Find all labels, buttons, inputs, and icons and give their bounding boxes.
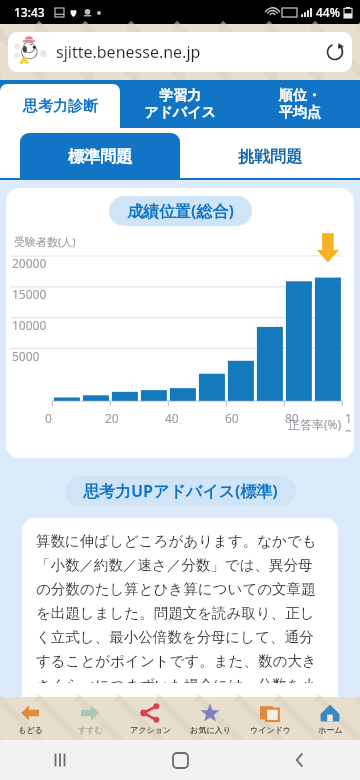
button[interactable]: 思考力診断 bbox=[0, 84, 120, 128]
staticText: sjitte.benesse.ne.jp bbox=[56, 41, 201, 63]
button[interactable]: アクション bbox=[120, 697, 180, 740]
button[interactable]: ウインドウ bbox=[240, 697, 300, 740]
staticText: 学習力 アドバイス bbox=[144, 87, 216, 121]
staticText: 5000 bbox=[12, 348, 40, 364]
staticText: 受験者数(人) bbox=[14, 234, 76, 249]
button[interactable]: お気に入り bbox=[180, 697, 240, 740]
button[interactable]: sjitte.benesse.ne.jp bbox=[8, 32, 352, 72]
staticText: 20000 bbox=[12, 255, 47, 271]
staticText: 思考力診断 bbox=[23, 97, 98, 116]
staticText: 13:43 bbox=[14, 4, 45, 20]
button[interactable]: Back bbox=[240, 740, 360, 780]
staticText: もどる bbox=[18, 725, 43, 735]
button[interactable]: ホーム bbox=[300, 697, 360, 740]
staticText: 0 bbox=[45, 410, 52, 426]
button[interactable]: 標準問題 bbox=[20, 133, 180, 180]
staticText: ホーム bbox=[318, 725, 343, 735]
staticText: 40 bbox=[165, 410, 179, 426]
staticText: 15000 bbox=[12, 286, 47, 302]
staticText: お気に入り bbox=[190, 725, 231, 735]
staticText: 順位・ 平均点 bbox=[279, 87, 321, 121]
button[interactable]: 学習力 アドバイス bbox=[120, 80, 240, 128]
button[interactable]: Reload bbox=[318, 35, 352, 69]
staticText: 10000 bbox=[12, 317, 47, 333]
staticText: 20 bbox=[105, 410, 119, 426]
staticText: ウインドウ bbox=[250, 725, 291, 735]
staticText: 成績位置(総合) bbox=[127, 200, 234, 222]
staticText: 80 bbox=[285, 410, 299, 426]
staticText: 60 bbox=[225, 410, 239, 426]
staticText: すすむ bbox=[78, 725, 103, 735]
staticText: 標準問題 bbox=[68, 147, 132, 167]
staticText: 44% bbox=[316, 4, 340, 20]
button[interactable]: もどる bbox=[0, 697, 60, 740]
button[interactable]: Home bbox=[120, 740, 240, 780]
staticText: 100 bbox=[345, 410, 354, 432]
staticText: アクション bbox=[130, 725, 171, 735]
staticText: 思考力UPアドバイス(標準) bbox=[83, 480, 278, 502]
staticText: 算数に伸ばしどころがあります。なかでも「小数／約数／速さ／分数」では、異分母の分… bbox=[36, 532, 324, 683]
button[interactable]: 挑戦問題 bbox=[180, 133, 360, 180]
button[interactable]: 順位・ 平均点 bbox=[240, 80, 360, 128]
staticText: 挑戦問題 bbox=[238, 147, 302, 167]
button[interactable]: すすむ bbox=[60, 697, 120, 740]
button[interactable]: Recent apps bbox=[0, 740, 120, 780]
staticText: 正答率(%) bbox=[288, 416, 342, 432]
